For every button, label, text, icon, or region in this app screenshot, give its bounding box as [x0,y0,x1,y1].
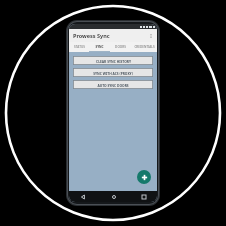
button[interactable]: CREDENTIALS [131,42,157,51]
button[interactable]: Recent apps [139,192,148,201]
button[interactable]: AUTO SYNC DOORS [73,80,153,89]
staticText: CREDENTIALS [134,45,155,49]
button[interactable]: SYNC [89,42,110,51]
staticText: Prowess Sync [73,32,110,39]
button[interactable]: Back [78,192,87,201]
staticText: AUTO SYNC DOORS [97,83,129,87]
button[interactable]: More options [147,32,155,40]
button[interactable]: SYNC WITH ACS (PROXY) [73,68,153,77]
button[interactable]: STATUS [69,42,89,51]
button[interactable]: CLEAR SYNC HISTORY [73,56,153,65]
button[interactable]: DOORS [110,42,131,51]
staticText: SYNC [95,45,104,49]
staticText: CLEAR SYNC HISTORY [96,59,131,63]
button[interactable]: Home [109,192,118,201]
button[interactable]: Sync now [137,170,151,184]
staticText: DOORS [115,45,126,49]
staticText: SYNC WITH ACS (PROXY) [93,71,133,75]
staticText: STATUS [74,45,85,49]
